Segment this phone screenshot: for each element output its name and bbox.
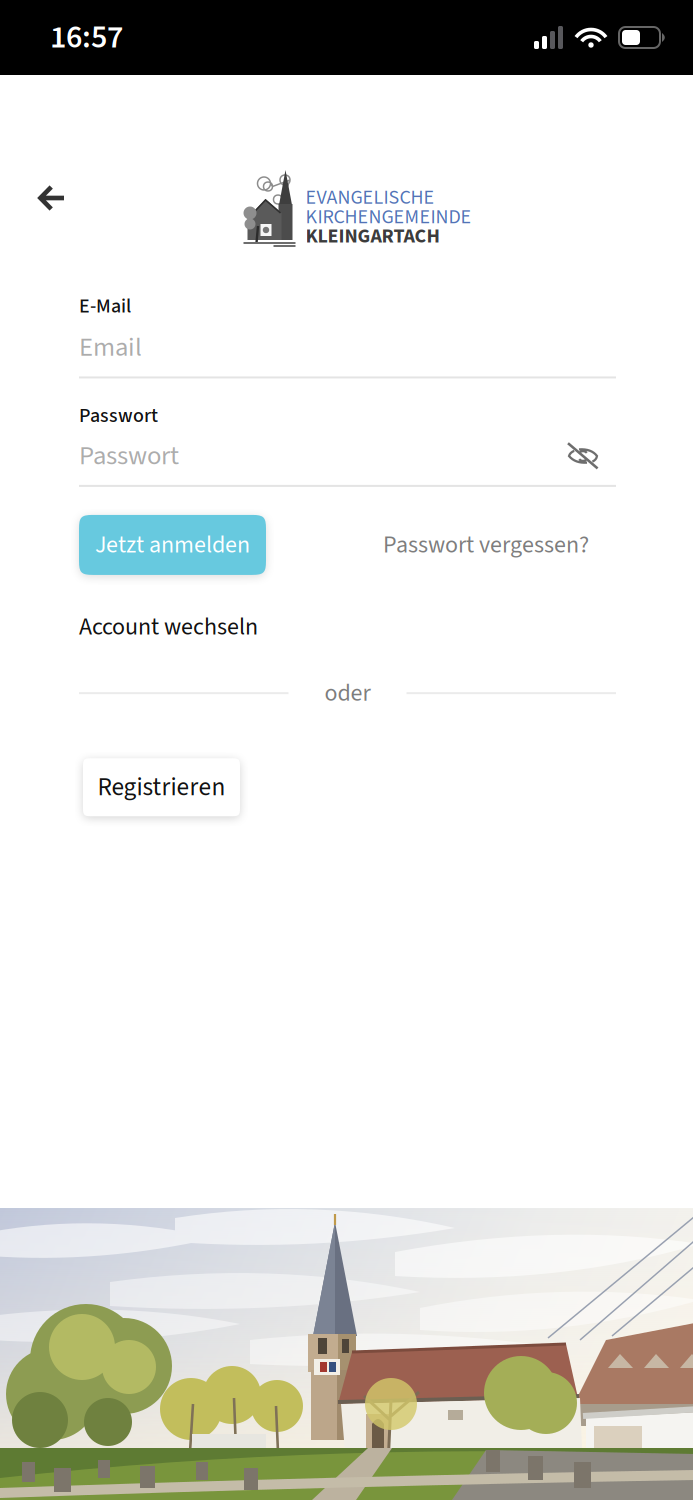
staticText: E-Mail [79,292,131,320]
button[interactable]: Jetzt anmelden [79,515,266,575]
button[interactable]: Passwort vergessen? [383,528,589,562]
staticText: KLEINGARTACH [305,227,439,246]
staticText: Passwort [79,401,158,430]
staticText: 16:57 [50,15,123,60]
staticText: oder [324,676,370,710]
button[interactable]: Show password [566,442,616,469]
staticText: EVANGELISCHE [305,188,434,207]
staticText: Email [79,328,142,366]
button[interactable]: Account wechseln [79,610,258,644]
staticText: Registrieren [97,769,225,805]
staticText: Passwort [79,437,179,475]
staticText: KIRCHENGEMEINDE [305,207,471,227]
button[interactable]: Registrieren [83,758,240,816]
staticText: Passwort vergessen? [383,528,589,562]
staticText: Account wechseln [79,610,258,644]
staticText: Jetzt anmelden [95,528,250,562]
button[interactable]: Back [0,75,89,231]
